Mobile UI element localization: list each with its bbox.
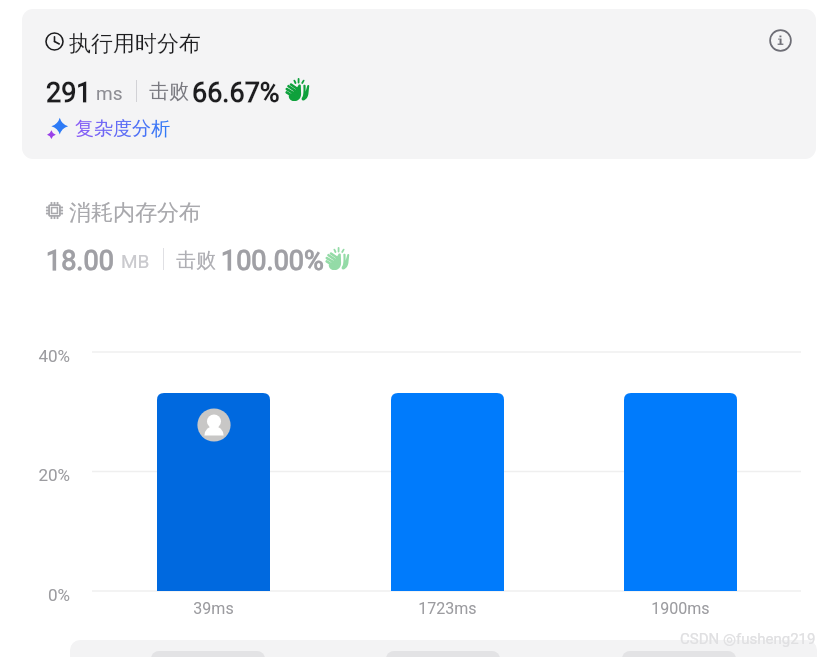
staticText: ms [96, 82, 123, 104]
staticText: 66.67% [192, 77, 280, 109]
staticText: 39ms [157, 599, 270, 618]
button[interactable]: 复杂度分析 [47, 116, 170, 142]
staticText: 291 [46, 77, 92, 109]
staticText: 击败 [149, 79, 189, 104]
button[interactable]: Info [758, 18, 802, 62]
staticText: MB [121, 250, 150, 272]
staticText: 100.00% [221, 245, 324, 277]
staticText: 击败 [176, 248, 216, 273]
staticText: 1900ms [624, 599, 737, 618]
staticText: 20% [10, 465, 70, 485]
staticText: 执行用时分布 [69, 30, 201, 58]
staticText: 18.00 [46, 245, 114, 277]
staticText: CSDN ◎fusheng219 [680, 630, 816, 648]
staticText: 1723ms [391, 599, 504, 618]
staticText: 复杂度分析 [75, 117, 170, 141]
staticText: 0% [10, 585, 70, 605]
staticText: 40% [10, 346, 70, 366]
staticText: 消耗内存分布 [69, 199, 201, 227]
